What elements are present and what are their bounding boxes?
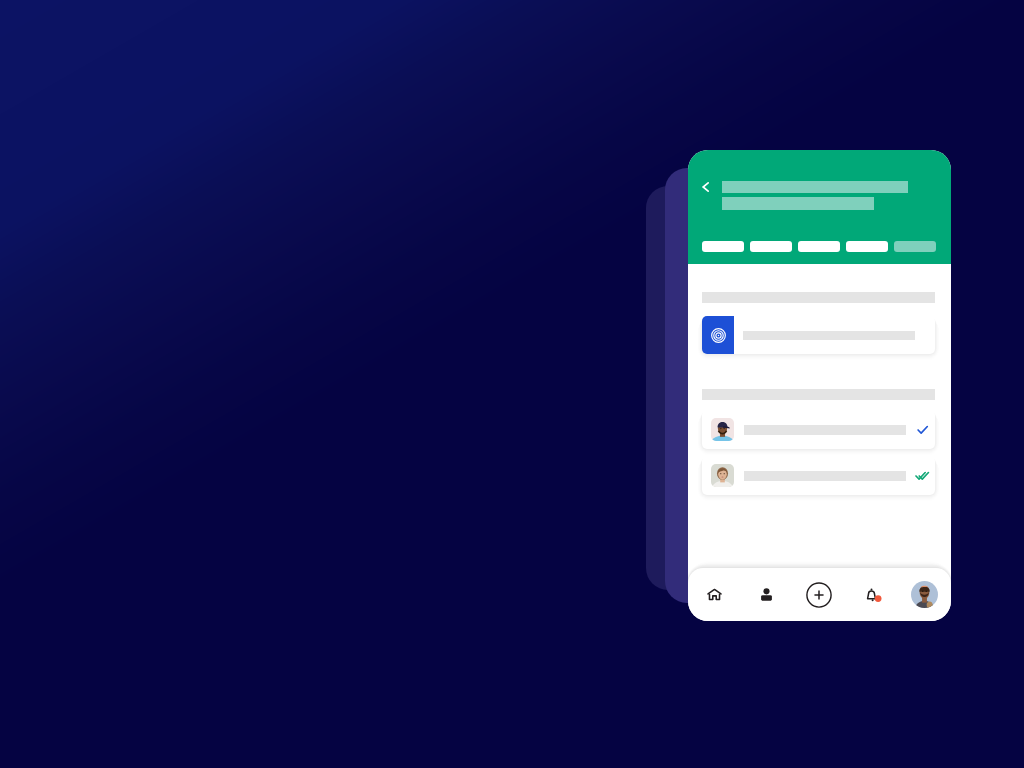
button[interactable] <box>702 410 935 449</box>
button[interactable]: Account <box>911 581 938 608</box>
button[interactable] <box>846 241 888 252</box>
button[interactable]: Notifications <box>845 568 898 621</box>
button[interactable] <box>702 456 935 495</box>
button[interactable] <box>750 241 792 252</box>
button[interactable]: Profile <box>740 568 792 621</box>
button[interactable] <box>702 316 935 354</box>
button[interactable]: Create <box>792 568 845 621</box>
button[interactable]: Back <box>696 178 714 196</box>
button[interactable] <box>702 241 744 252</box>
button[interactable]: Home <box>688 568 740 621</box>
button[interactable] <box>798 241 840 252</box>
button[interactable] <box>894 241 936 252</box>
